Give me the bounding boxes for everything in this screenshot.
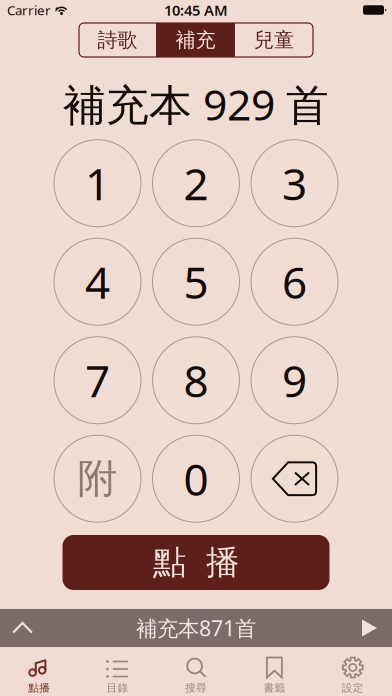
button[interactable]: 6 xyxy=(251,238,338,325)
staticText: 目錄 xyxy=(107,681,129,694)
button[interactable]: 7 xyxy=(54,337,141,424)
button[interactable]: 1 xyxy=(54,140,141,227)
staticText: 0 xyxy=(183,449,208,508)
button[interactable]: 2 xyxy=(152,140,239,227)
staticText: 5 xyxy=(183,252,208,311)
button[interactable]: Expand now playing xyxy=(0,609,45,647)
button[interactable]: 搜尋 xyxy=(157,647,235,696)
button[interactable]: 附 xyxy=(54,435,141,522)
staticText: 7 xyxy=(85,351,110,409)
staticText: 附 xyxy=(77,454,117,503)
button[interactable]: Play xyxy=(347,609,392,647)
staticText: 詩歌 xyxy=(97,28,137,52)
staticText: 點 播 xyxy=(153,542,239,583)
staticText: 補充本871首 xyxy=(136,614,256,642)
button[interactable]: 書籤 xyxy=(235,647,314,696)
staticText: 補充 xyxy=(175,28,215,52)
button[interactable]: 點播 xyxy=(0,647,78,696)
staticText: 兒童 xyxy=(254,28,294,52)
button[interactable]: 兒童 xyxy=(235,23,313,57)
button[interactable]: 詩歌 xyxy=(79,23,156,57)
staticText: 10:45 AM xyxy=(164,0,228,20)
staticText: 設定 xyxy=(342,681,364,694)
staticText: 1 xyxy=(85,154,110,212)
button[interactable]: 4 xyxy=(54,238,141,325)
staticText: 8 xyxy=(183,351,208,409)
button[interactable]: 5 xyxy=(152,238,239,325)
staticText: 書籤 xyxy=(263,681,285,694)
button[interactable]: 9 xyxy=(251,337,338,424)
staticText: Carrier xyxy=(7,1,51,19)
button[interactable]: 補充 xyxy=(156,23,235,57)
staticText: 3 xyxy=(282,154,307,212)
staticText: 4 xyxy=(85,252,110,311)
staticText: 6 xyxy=(282,252,307,311)
button[interactable]: 目錄 xyxy=(78,647,157,696)
staticText: 9 xyxy=(282,351,307,409)
button[interactable]: 點 播 xyxy=(62,535,329,590)
staticText: 補充本 929 首 xyxy=(63,76,329,132)
button[interactable]: 3 xyxy=(251,140,338,227)
staticText: 點播 xyxy=(28,681,50,694)
button[interactable]: Delete xyxy=(251,435,338,522)
button[interactable]: 8 xyxy=(152,337,239,424)
staticText: 2 xyxy=(183,154,208,212)
button[interactable]: 設定 xyxy=(314,647,392,696)
button[interactable]: 0 xyxy=(152,435,239,522)
staticText: 搜尋 xyxy=(185,681,207,694)
